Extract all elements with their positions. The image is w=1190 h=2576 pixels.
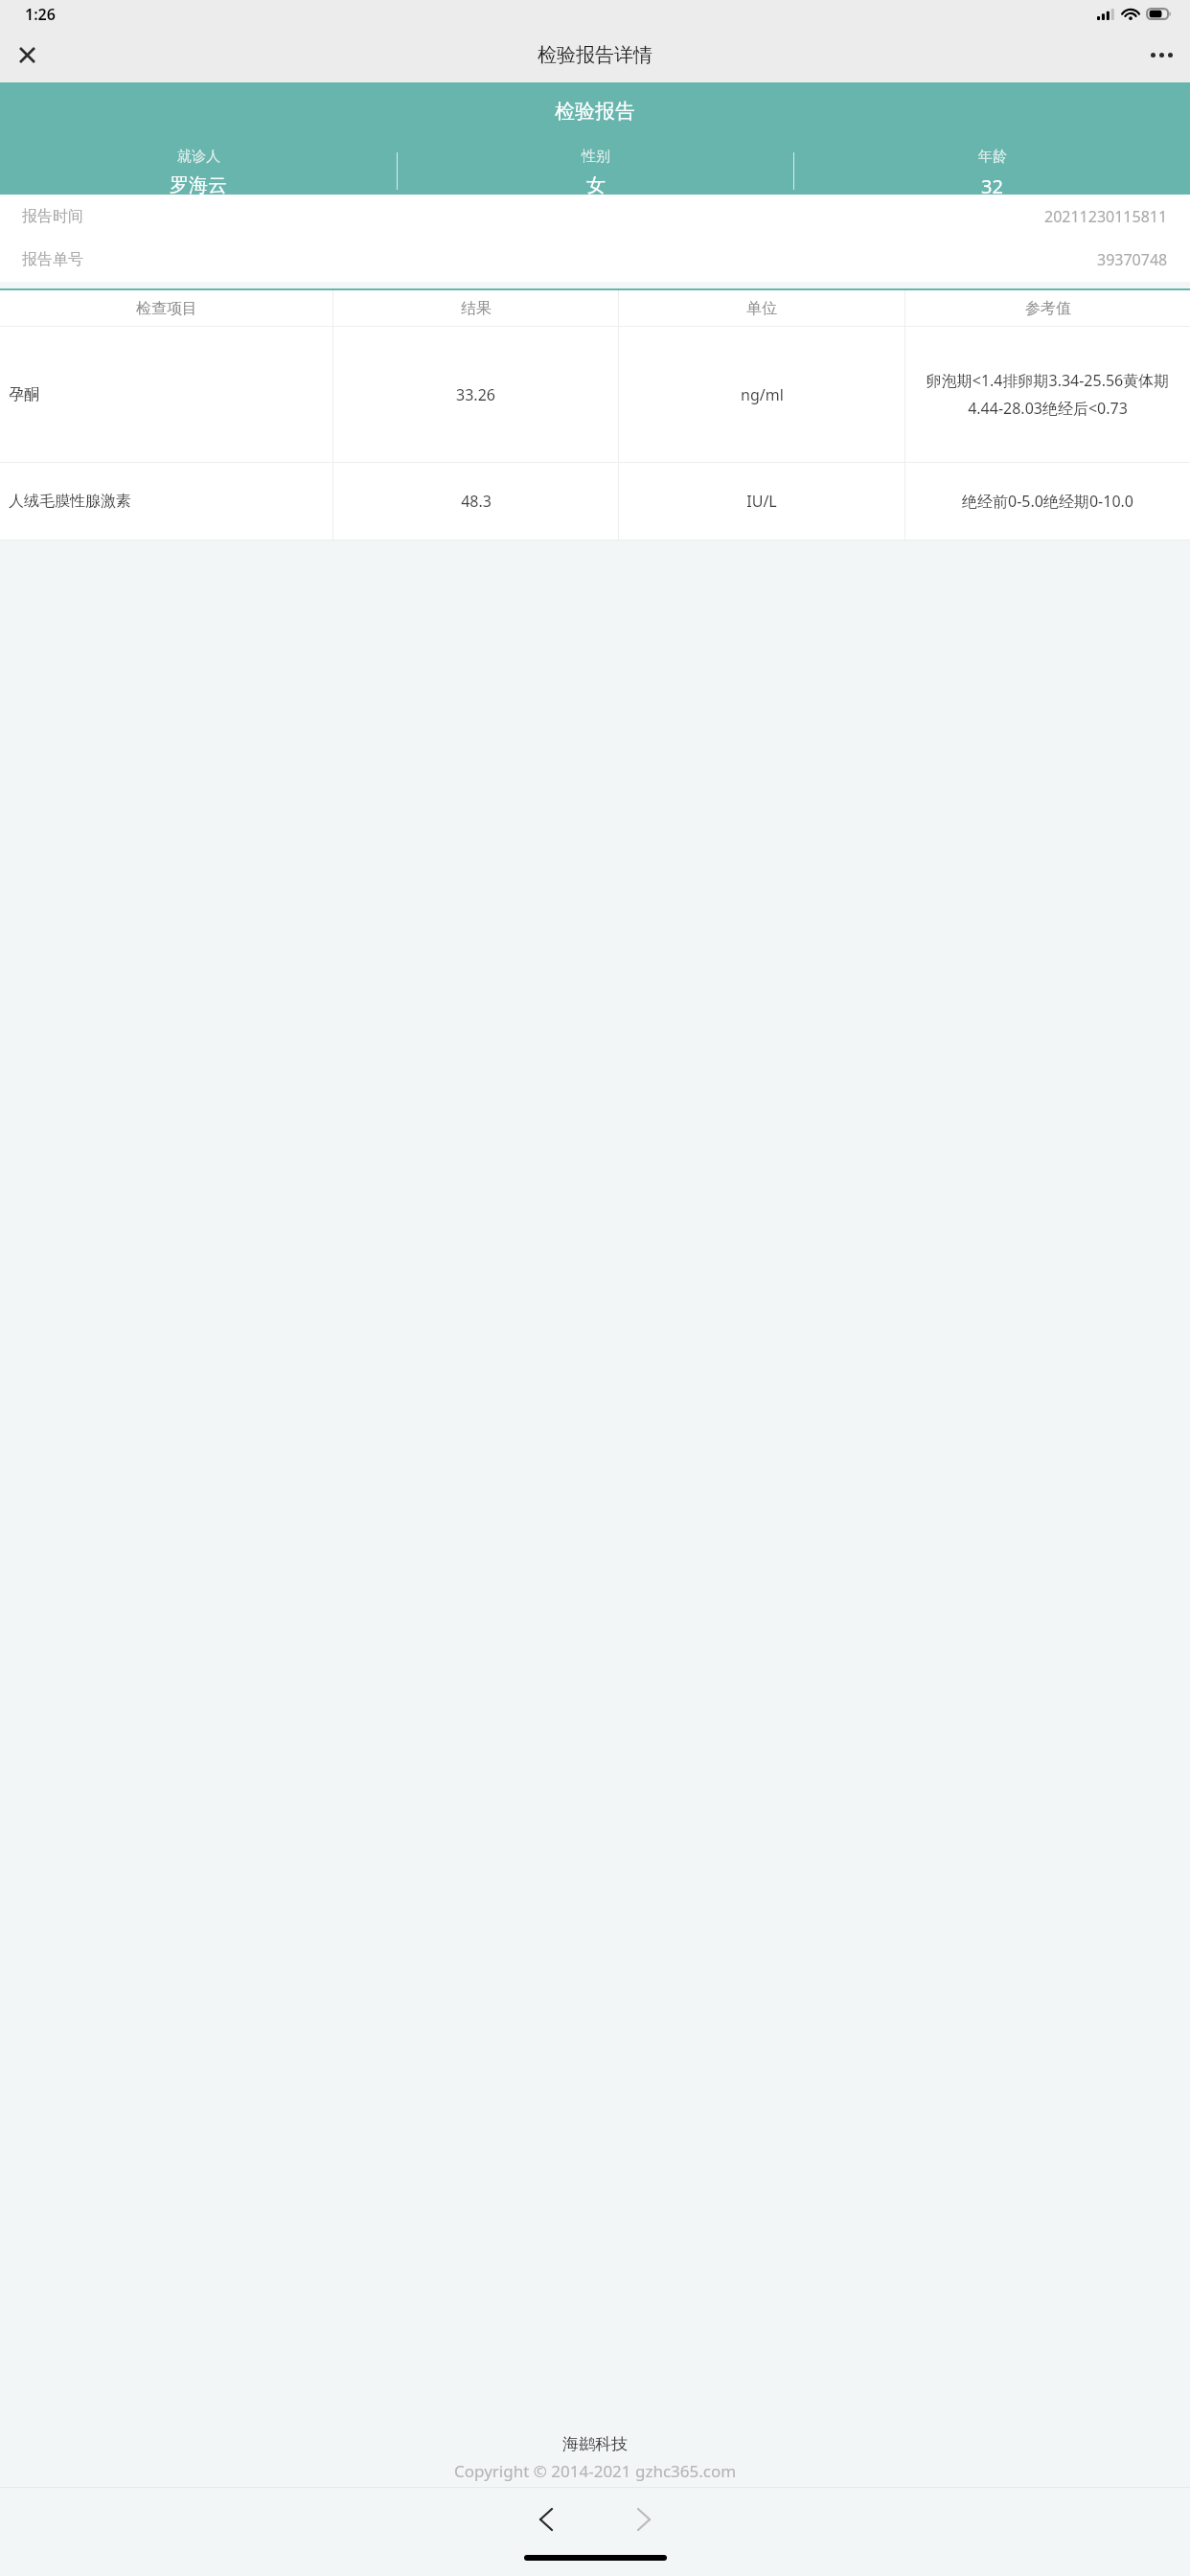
staticText: 检验报告详情 [538, 43, 652, 67]
staticText: 1:26 [25, 4, 56, 25]
staticText: 39370748 [1097, 249, 1168, 270]
button[interactable]: 孕酮 [0, 327, 1190, 462]
button[interactable]: 人绒毛膜性腺激素 [0, 463, 1190, 540]
staticText: 年龄 [978, 148, 1007, 166]
staticText: 48.3 [461, 491, 492, 512]
staticText: 海鹚科技 [562, 2434, 628, 2454]
staticText: 单位 [746, 299, 777, 318]
staticText: 卵泡期<1.4排卵期3.34-25.56黄体期4.44-28.03绝经后<0.7… [910, 370, 1185, 419]
staticText: 女 [586, 173, 606, 195]
staticText: 32 [981, 173, 1003, 195]
staticText: 33.26 [456, 384, 495, 405]
staticText: Copyright © 2014-2021 gzhc365.com [454, 2460, 737, 2482]
staticText: 报告时间 [22, 207, 83, 226]
staticText: 结果 [461, 299, 492, 318]
staticText: 人绒毛膜性腺激素 [9, 492, 131, 511]
staticText: 参考值 [1025, 299, 1071, 318]
button[interactable]: 报告时间 [0, 195, 1190, 238]
button[interactable]: 检查项目 [0, 290, 1190, 326]
button[interactable]: More options [1133, 28, 1190, 82]
staticText: 检验报告 [555, 99, 635, 124]
staticText: IU/L [746, 491, 777, 512]
staticText: 检查项目 [136, 299, 197, 318]
staticText: 罗海云 [170, 173, 227, 195]
button[interactable]: 报告单号 [0, 238, 1190, 281]
button[interactable]: Close [0, 28, 55, 82]
staticText: 20211230115811 [1044, 206, 1168, 227]
staticText: 报告单号 [22, 250, 83, 269]
button[interactable]: Back [518, 2492, 574, 2547]
staticText: ng/ml [741, 384, 784, 405]
staticText: 就诊人 [177, 148, 220, 166]
staticText: 孕酮 [9, 385, 39, 404]
staticText: 性别 [582, 148, 610, 166]
staticText: 绝经前0-5.0绝经期0-10.0 [962, 491, 1133, 512]
button[interactable]: Forward [616, 2492, 672, 2547]
